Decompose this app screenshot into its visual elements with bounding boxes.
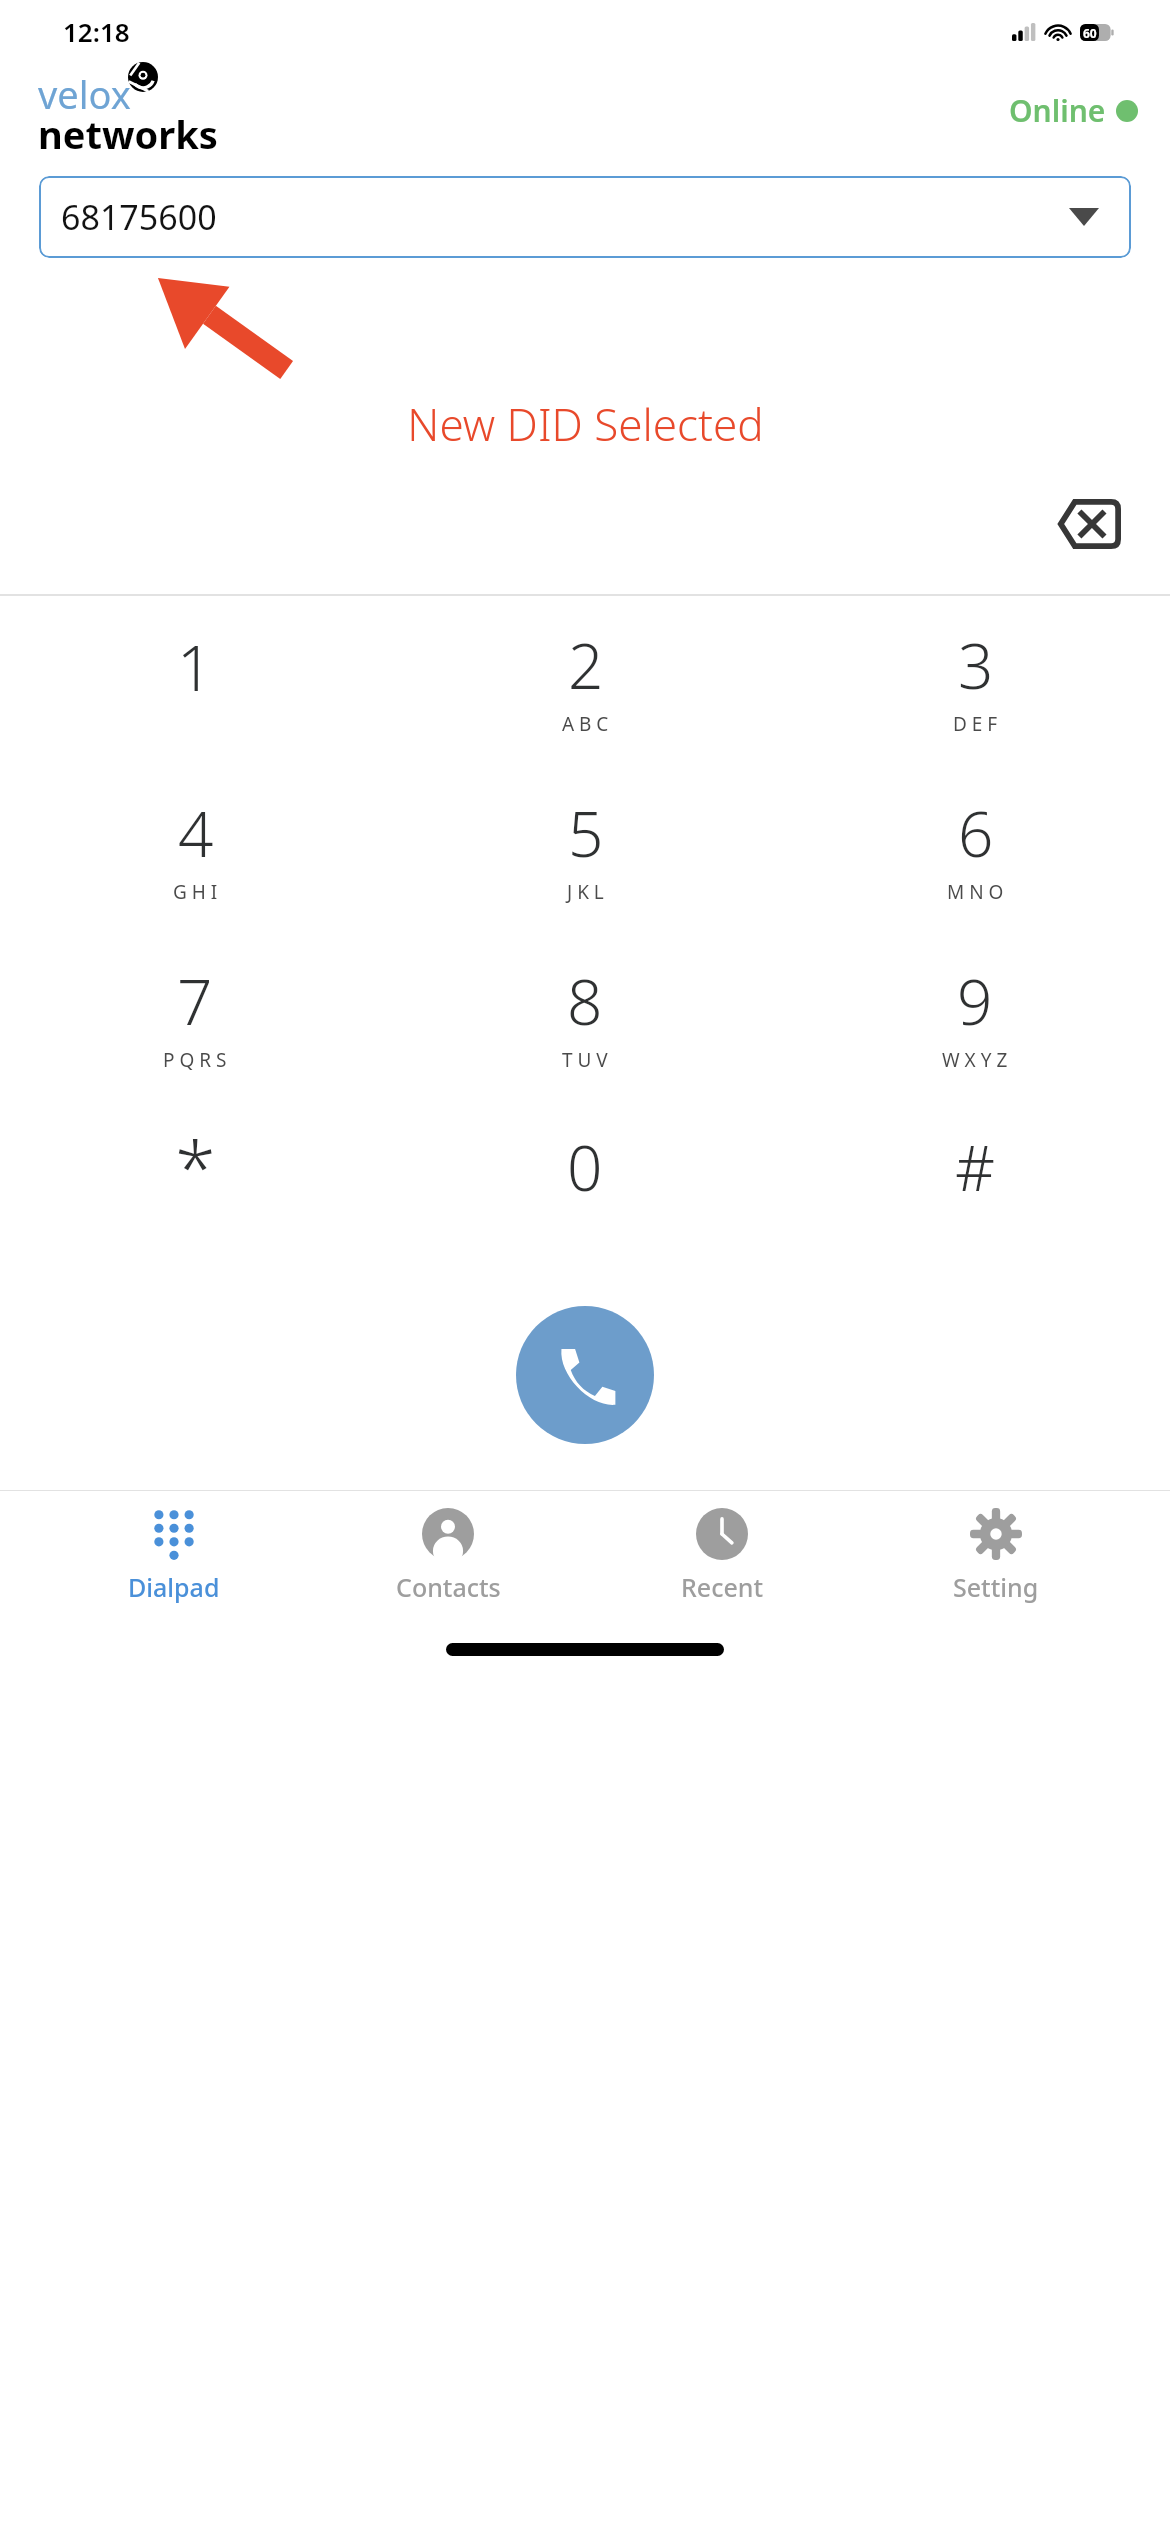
staticText: 4 xyxy=(178,791,214,875)
staticText: Contacts xyxy=(396,1570,501,1604)
button[interactable]: 6 xyxy=(780,764,1170,932)
staticText: 12:18 xyxy=(63,14,130,49)
button[interactable]: * xyxy=(0,1100,390,1260)
button[interactable]: Dialpad xyxy=(74,1508,274,1604)
button[interactable]: Online xyxy=(1009,90,1138,131)
staticText: A B C xyxy=(562,711,609,737)
staticText: 3 xyxy=(958,623,994,707)
staticText: J K L xyxy=(567,879,604,905)
button[interactable]: 1 xyxy=(0,596,390,764)
button[interactable]: 68175600 xyxy=(39,176,1131,258)
staticText: W X Y Z xyxy=(942,1047,1008,1073)
staticText: P Q R S xyxy=(163,1047,227,1073)
staticText: 68175600 xyxy=(61,194,217,240)
staticText: New DID Selected xyxy=(407,394,764,454)
button[interactable]: Setting xyxy=(896,1508,1096,1604)
staticText: Dialpad xyxy=(128,1570,220,1604)
staticText: networks xyxy=(38,108,218,160)
staticText: 7 xyxy=(177,959,213,1043)
staticText: * xyxy=(175,1116,216,1217)
button[interactable]: 5 xyxy=(390,764,780,932)
staticText: 60 xyxy=(1083,25,1097,41)
button[interactable]: 3 xyxy=(780,596,1170,764)
button[interactable]: 9 xyxy=(780,932,1170,1100)
button[interactable]: 7 xyxy=(0,932,390,1100)
other: Select DID xyxy=(1069,208,1099,226)
staticText: 8 xyxy=(567,959,603,1043)
staticText: M N O xyxy=(947,879,1004,905)
staticText: Online xyxy=(1009,90,1106,131)
staticText: velox xyxy=(38,68,131,120)
staticText: 9 xyxy=(957,959,993,1043)
staticText: 2 xyxy=(568,623,604,707)
staticText: T U V xyxy=(562,1047,608,1073)
staticText: # xyxy=(955,1125,996,1209)
staticText: 6 xyxy=(958,791,994,875)
button[interactable]: 8 xyxy=(390,932,780,1100)
staticText: 0 xyxy=(567,1125,603,1209)
button[interactable]: Call xyxy=(516,1306,654,1444)
staticText: Recent xyxy=(681,1570,764,1604)
button[interactable]: # xyxy=(780,1100,1170,1260)
button[interactable]: 4 xyxy=(0,764,390,932)
staticText: Setting xyxy=(953,1570,1039,1604)
button[interactable]: Recent xyxy=(622,1508,822,1604)
staticText: D E F xyxy=(953,711,998,737)
button[interactable]: Backspace xyxy=(1044,480,1132,568)
button[interactable]: 2 xyxy=(390,596,780,764)
staticText: G H I xyxy=(173,879,218,905)
button[interactable]: Contacts xyxy=(348,1508,548,1604)
staticText: 1 xyxy=(177,625,213,709)
button[interactable]: 0 xyxy=(390,1100,780,1260)
staticText: 5 xyxy=(568,791,604,875)
